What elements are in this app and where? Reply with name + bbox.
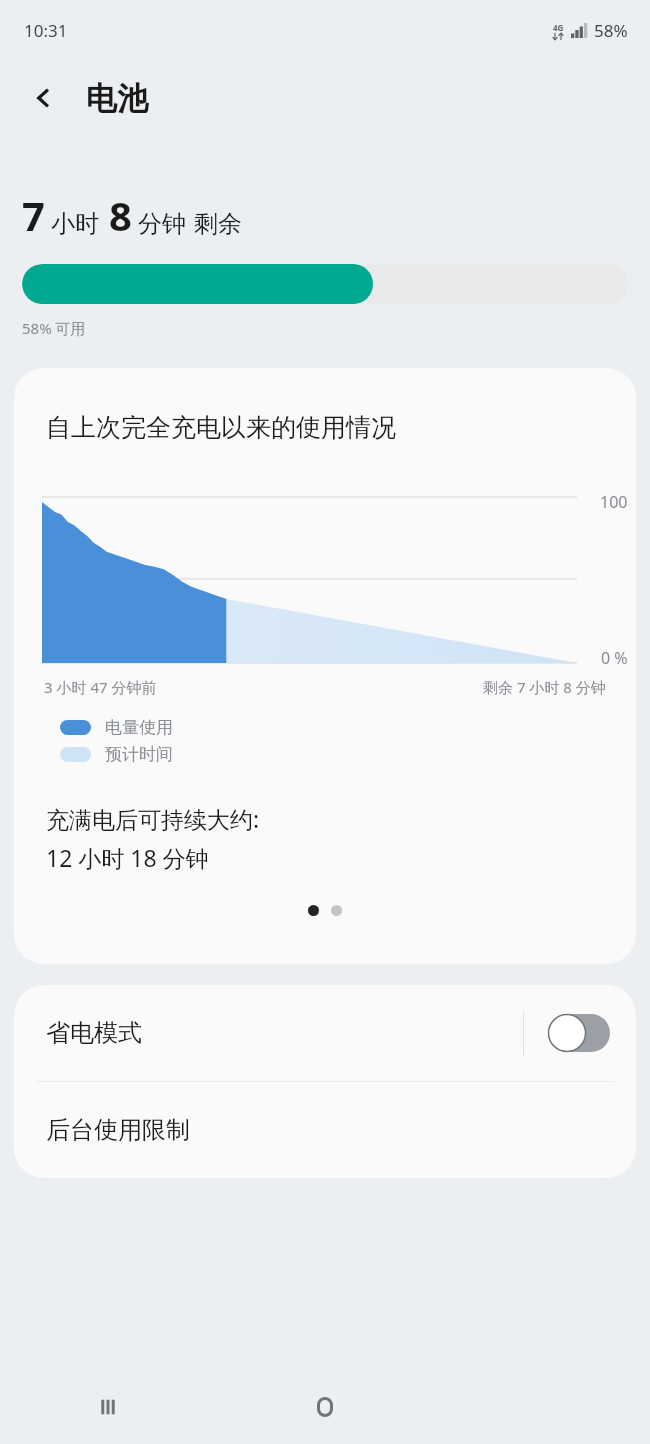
staticText: 后台使用限制 (46, 1115, 190, 1145)
staticText: 4G (553, 22, 564, 33)
staticText: 12 小时 18 分钟 (46, 842, 209, 873)
staticText: 预计时间 (105, 744, 173, 765)
staticText: 自上次完全充电以来的使用情况 (46, 412, 396, 443)
button[interactable]: 后台使用限制 (14, 1082, 636, 1178)
staticText: 10:31 (24, 19, 68, 42)
staticText: 0 % (601, 647, 628, 669)
staticText: 剩余 (194, 209, 242, 239)
button[interactable]: Home (216, 1370, 433, 1444)
staticText: 7 (22, 188, 45, 242)
button[interactable]: 省电模式 (14, 985, 636, 1081)
staticText: 电量使用 (105, 717, 173, 738)
staticText: 8 (109, 188, 132, 242)
button[interactable]: 省电模式 toggle (548, 1014, 610, 1052)
staticText: 100 (600, 491, 628, 513)
button[interactable]: Recents (0, 1370, 216, 1444)
staticText: 充满电后可持续大约: (46, 803, 260, 834)
staticText: 58% (594, 19, 628, 42)
staticText: 小时 (51, 209, 99, 239)
staticText: 58% 可用 (22, 318, 86, 338)
staticText: 省电模式 (46, 1018, 142, 1048)
staticText: 3 小时 47 分钟前 (44, 677, 157, 697)
staticText: 剩余 7 小时 8 分钟 (483, 677, 606, 697)
button[interactable]: Back (20, 74, 68, 122)
staticText: 分钟 (138, 209, 186, 239)
button[interactable]: 自上次完全充电以来的使用情况 (14, 368, 636, 964)
staticText: 电池 (86, 79, 148, 118)
